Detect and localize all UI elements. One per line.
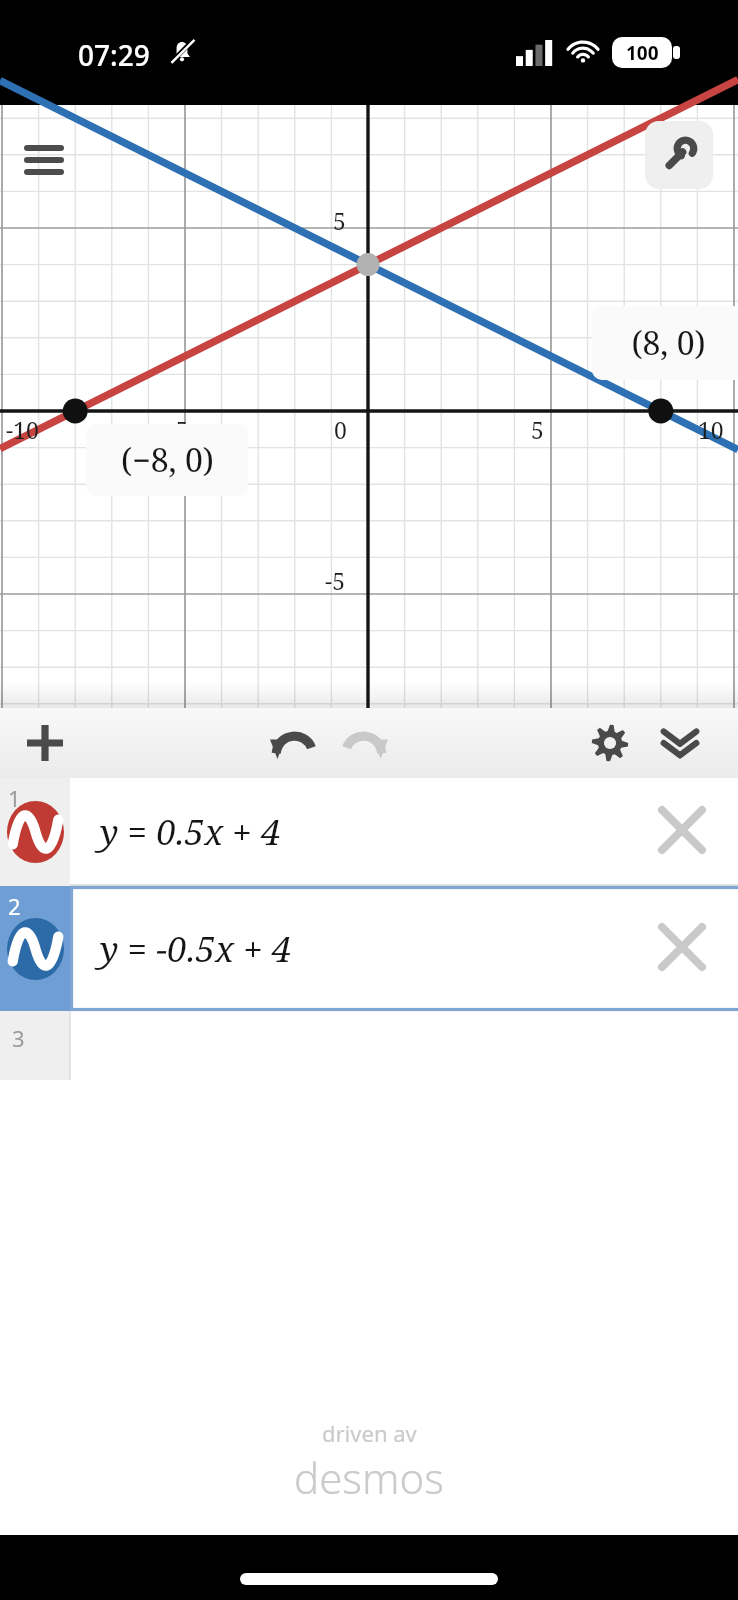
staticText: 2 [8,891,21,921]
staticText: 0 [334,414,347,445]
staticText: -5 [325,565,345,596]
button[interactable]: 1 [0,778,738,886]
button[interactable]: Collapse list [650,715,710,771]
button[interactable]: Settings [580,715,640,771]
staticText: y = 0.5x + 4 [100,808,281,856]
staticText: driven av [322,1418,417,1448]
staticText: desmos [294,1449,444,1506]
staticText: 1 [8,783,21,813]
staticText: -10 [6,414,39,445]
button[interactable]: Redo [336,715,396,771]
button[interactable]: Delete expression 2 [650,915,714,979]
button[interactable]: Menu [16,132,72,188]
button[interactable]: Delete expression 1 [650,798,714,862]
button[interactable]: Undo [262,715,322,771]
staticText: 07:29 [78,36,150,74]
button[interactable]: 2 [0,886,738,1011]
staticText: (−8, 0) [121,438,214,482]
staticText: -5 [168,414,188,445]
button[interactable]: Graph tools [645,121,713,189]
button[interactable]: Add expression [14,715,76,771]
staticText: 3 [12,1023,25,1053]
staticText: (8, 0) [631,321,706,365]
staticText: y = −0.5x + 4 [100,925,292,973]
staticText: 10 [698,414,724,445]
button[interactable]: 3 [0,1011,738,1080]
staticText: 5 [531,414,544,445]
staticText: 100 [626,40,659,66]
staticText: 5 [333,205,346,236]
